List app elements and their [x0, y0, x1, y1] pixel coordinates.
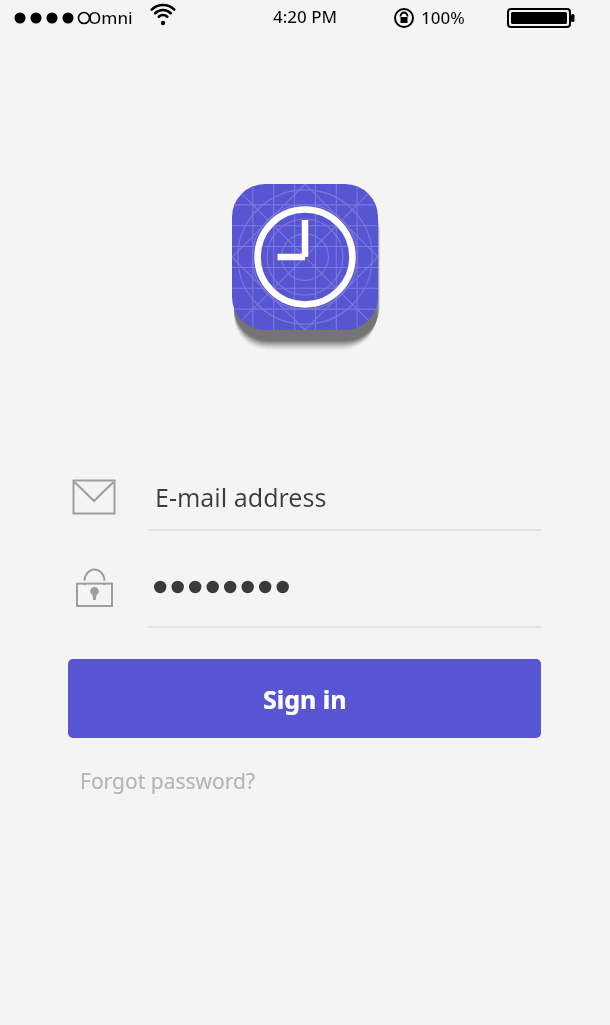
other: E-mail	[73, 480, 115, 514]
button[interactable]: Sign in	[68, 659, 541, 738]
staticText: Sign in	[263, 682, 347, 716]
staticText: 100%	[421, 6, 465, 29]
staticText: 4:20 PM	[273, 5, 338, 28]
staticText: Forgot password?	[80, 767, 256, 796]
staticText: Omni	[88, 6, 133, 29]
other: Password	[76, 568, 113, 607]
button[interactable]: Password	[0, 552, 610, 622]
button[interactable]: Forgot password?	[68, 757, 268, 805]
staticText: E-mail address	[155, 480, 327, 514]
button[interactable]: E-mail	[0, 462, 610, 532]
